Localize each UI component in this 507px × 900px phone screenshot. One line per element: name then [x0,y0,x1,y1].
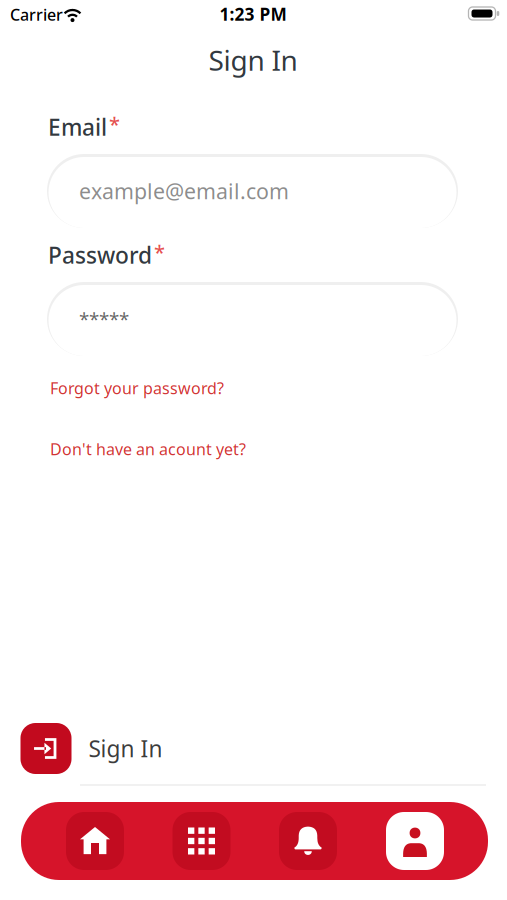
button[interactable]: Forgot your password? [50,377,224,399]
staticText: Password [48,240,152,270]
staticText: * [109,111,120,137]
button[interactable]: Notifications [279,812,337,870]
staticText: Forgot your password? [50,377,224,399]
staticText: * [154,239,165,265]
staticText: Sign In [208,41,297,79]
button[interactable]: Profile [386,812,444,870]
staticText: Email [48,112,107,142]
button[interactable]: Home [66,812,124,870]
button[interactable]: ***** [47,282,458,356]
button[interactable]: Don't have an acount yet? [50,438,246,460]
staticText: Sign In [88,733,162,763]
button[interactable]: Sign In [20,723,487,774]
button[interactable]: example@email.com [47,154,458,228]
button[interactable]: Categories [172,812,230,870]
staticText: ***** [79,307,129,331]
staticText: 1:23 PM [219,2,286,25]
staticText: example@email.com [79,177,289,205]
staticText: Carrier [10,4,63,25]
staticText: Don't have an acount yet? [50,438,246,460]
